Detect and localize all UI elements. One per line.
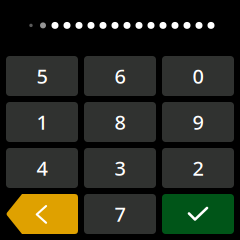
button[interactable]: 0 xyxy=(162,56,234,96)
button[interactable]: 8 xyxy=(84,102,156,142)
button[interactable]: Delete xyxy=(6,194,78,234)
staticText: 1 xyxy=(36,109,47,135)
button[interactable]: 1 xyxy=(6,102,78,142)
staticText: 7 xyxy=(114,201,125,227)
button[interactable]: 7 xyxy=(84,194,156,234)
button[interactable]: 2 xyxy=(162,148,234,188)
button[interactable]: 4 xyxy=(6,148,78,188)
button[interactable]: Confirm xyxy=(162,194,234,234)
staticText: 5 xyxy=(36,63,47,89)
button[interactable]: 6 xyxy=(84,56,156,96)
staticText: 4 xyxy=(36,155,47,181)
staticText: 9 xyxy=(192,109,203,135)
staticText: 3 xyxy=(114,155,125,181)
button[interactable]: 5 xyxy=(6,56,78,96)
staticText: 8 xyxy=(114,109,125,135)
staticText: 2 xyxy=(192,155,203,181)
staticText: 6 xyxy=(114,63,125,89)
button[interactable]: 9 xyxy=(162,102,234,142)
staticText: 0 xyxy=(192,63,203,89)
button[interactable]: 3 xyxy=(84,148,156,188)
